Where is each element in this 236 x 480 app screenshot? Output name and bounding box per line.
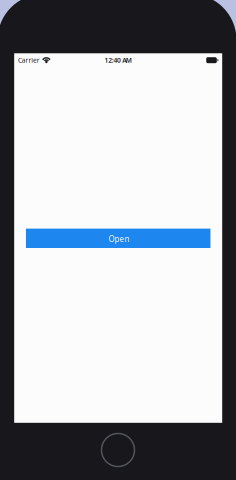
button[interactable]: Open [26,229,210,248]
staticText: 12:40 AM [105,56,132,65]
staticText: Carrier [18,56,40,65]
staticText: Open [108,234,129,244]
